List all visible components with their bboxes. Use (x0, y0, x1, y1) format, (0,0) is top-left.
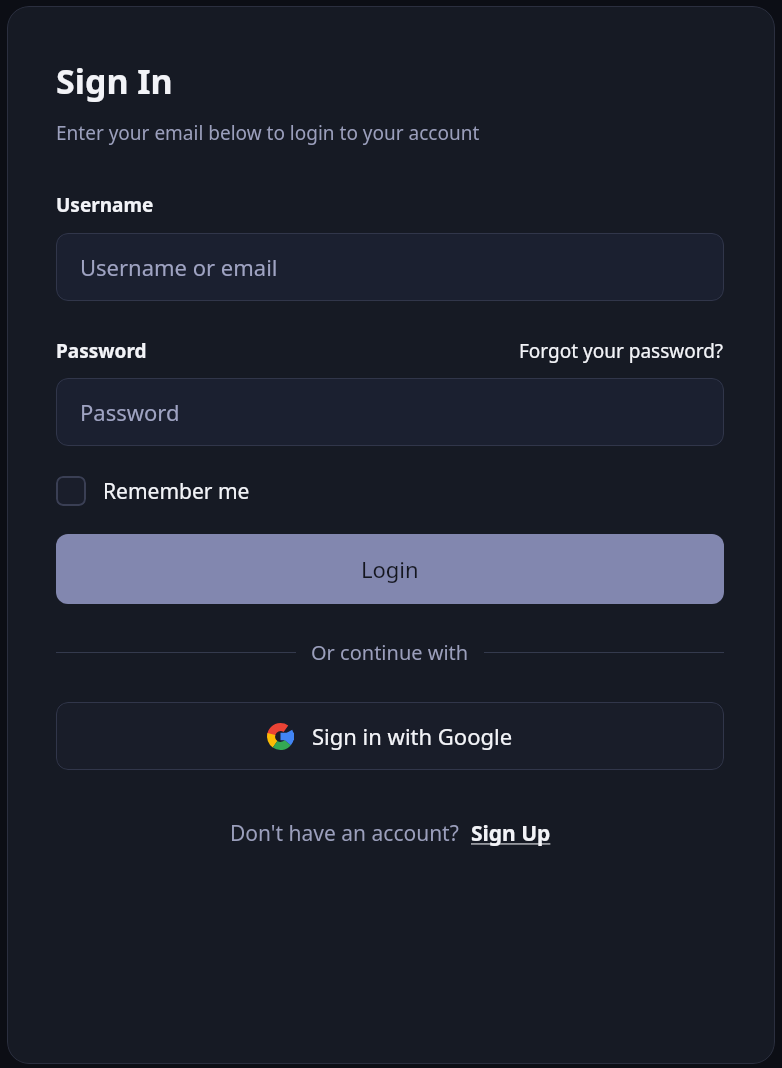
button[interactable]: Password (56, 378, 724, 446)
staticText: Or continue with (311, 639, 469, 666)
button[interactable]: Login (56, 534, 724, 604)
staticText: Forgot your password? (519, 338, 724, 364)
button[interactable]: Username or email (56, 233, 724, 301)
button[interactable]: Forgot your password? (519, 338, 724, 364)
staticText: Sign Up (471, 819, 551, 848)
staticText: Don't have an account? (230, 819, 459, 848)
staticText: Sign in with Google (312, 721, 513, 751)
other: Google (267, 723, 294, 750)
staticText: Login (361, 554, 419, 584)
button[interactable]: Google (56, 702, 724, 770)
staticText: Remember me (103, 477, 250, 506)
staticText: Enter your email below to login to your … (56, 120, 480, 146)
staticText: Username or email (80, 252, 278, 282)
staticText: Sign In (56, 58, 173, 104)
staticText: Password (56, 338, 147, 364)
button[interactable]: Sign Up (471, 819, 551, 848)
button[interactable]: Remember me (56, 476, 250, 506)
staticText: Password (80, 397, 180, 427)
staticText: Username (56, 192, 154, 218)
